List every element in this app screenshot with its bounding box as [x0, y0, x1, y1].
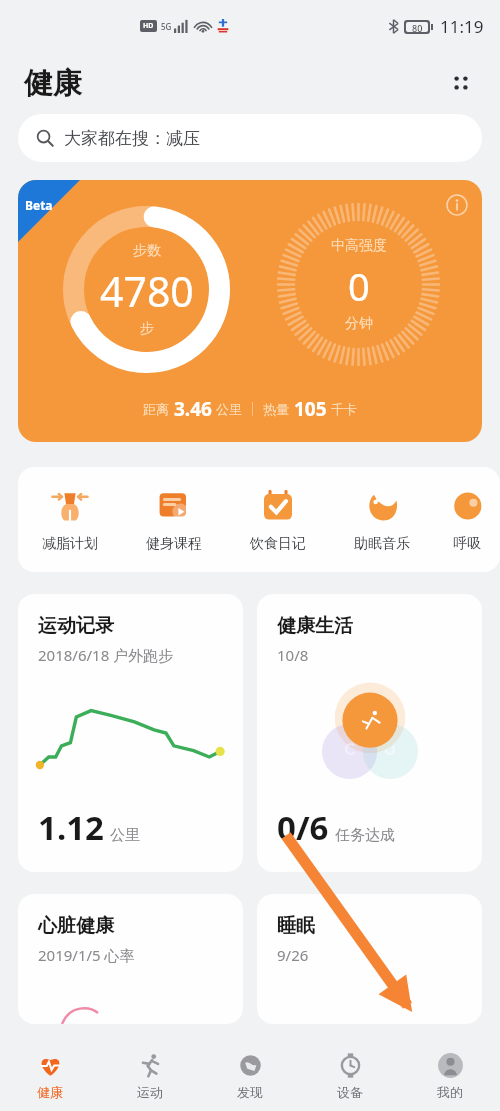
staticText: 9/26	[277, 945, 309, 965]
button[interactable]: 饮食日记	[226, 467, 330, 572]
staticText: 热量	[263, 401, 289, 417]
button[interactable]: Beta	[18, 180, 482, 442]
staticText: 减脂计划	[42, 535, 98, 553]
staticText: 1.12	[38, 805, 104, 850]
button[interactable]: 大家都在搜：减压	[18, 114, 482, 162]
staticText: 设备	[337, 1084, 363, 1100]
staticText: 0/6	[277, 805, 329, 850]
button[interactable]: 我的	[400, 1040, 500, 1111]
staticText: 11:19	[440, 15, 484, 38]
staticText: 睡眠	[277, 914, 315, 938]
staticText: 健康生活	[277, 614, 353, 638]
staticText: 助眠音乐	[354, 535, 410, 553]
staticText: 4780	[100, 263, 194, 319]
staticText: 公里	[216, 401, 242, 417]
staticText: 2019/1/5 心率	[38, 945, 135, 965]
staticText: 3.46	[174, 396, 212, 422]
staticText: 10/8	[277, 645, 309, 665]
button[interactable]: 心脏健康	[18, 894, 243, 1024]
staticText: 大家都在搜：减压	[64, 128, 200, 149]
staticText: 发现	[237, 1084, 263, 1100]
staticText: 运动记录	[38, 614, 114, 638]
staticText: Beta	[25, 197, 53, 213]
staticText: 千卡	[331, 401, 357, 417]
staticText: 5G	[161, 21, 172, 32]
staticText: 105	[294, 396, 327, 422]
staticText: 80	[412, 22, 423, 32]
staticText: 我的	[437, 1084, 463, 1100]
staticText: 健康	[24, 65, 82, 102]
staticText: 饮食日记	[250, 535, 306, 553]
staticText: 健身课程	[146, 535, 202, 553]
button[interactable]: 睡眠	[257, 894, 482, 1024]
button[interactable]: 运动	[100, 1040, 200, 1111]
staticText: 健康	[37, 1084, 63, 1100]
staticText: 公里	[110, 826, 140, 845]
button[interactable]: 运动记录	[18, 594, 243, 872]
staticText: 步	[140, 320, 154, 338]
staticText: 0	[348, 260, 370, 312]
staticText: HD	[143, 21, 154, 31]
staticText: 步数	[133, 242, 161, 260]
button[interactable]: 发现	[200, 1040, 300, 1111]
button[interactable]: 健康生活	[257, 594, 482, 872]
button[interactable]: 呼吸	[434, 467, 500, 572]
staticText: 心脏健康	[38, 914, 114, 938]
staticText: 中高强度	[331, 237, 387, 255]
staticText: 2018/6/18 户外跑步	[38, 645, 174, 665]
staticText: 分钟	[345, 315, 373, 333]
button[interactable]: 助眠音乐	[330, 467, 434, 572]
button[interactable]: 设备	[300, 1040, 400, 1111]
staticText: 距离	[143, 401, 169, 417]
staticText: 任务达成	[335, 826, 395, 845]
button[interactable]: Information	[444, 192, 470, 218]
button[interactable]: 减脂计划	[18, 467, 122, 572]
staticText: 运动	[137, 1084, 163, 1100]
button[interactable]: 健身课程	[122, 467, 226, 572]
button[interactable]: More options	[444, 66, 478, 100]
staticText: 呼吸	[453, 535, 481, 553]
button[interactable]: 健康	[0, 1040, 100, 1111]
